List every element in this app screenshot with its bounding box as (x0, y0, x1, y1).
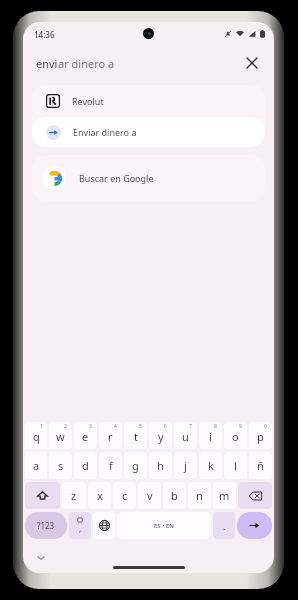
button[interactable]: e (74, 422, 97, 449)
staticText: e (82, 429, 89, 444)
button[interactable]: Emoji and comma (69, 512, 91, 539)
staticText: p (257, 429, 264, 444)
button[interactable]: w (49, 422, 72, 449)
staticText: j (184, 458, 187, 473)
staticText: h (157, 458, 164, 473)
staticText: l (234, 458, 237, 473)
button[interactable]: k (199, 452, 222, 479)
staticText: 14:36 (34, 29, 55, 40)
button[interactable]: q (25, 422, 47, 449)
button[interactable]: l (224, 452, 247, 479)
button[interactable]: a (25, 452, 47, 479)
button[interactable]: Clear search (241, 52, 263, 74)
staticText: y (158, 429, 164, 444)
staticText: x (97, 488, 103, 503)
staticText: f (109, 458, 113, 473)
button[interactable]: Buscar en Google (32, 155, 265, 201)
button[interactable]: b (163, 482, 186, 509)
button[interactable]: c (113, 482, 136, 509)
staticText: Buscar en Google (79, 172, 154, 184)
staticText: 8 (214, 423, 217, 430)
staticText: 9 (239, 423, 242, 430)
button[interactable]: ñ (249, 452, 272, 479)
staticText: 1 (40, 423, 43, 430)
button[interactable]: z (62, 482, 86, 509)
staticText: 7 (189, 423, 192, 430)
staticText: r (108, 429, 113, 444)
staticText: a (33, 458, 40, 473)
button[interactable]: ES • EN (117, 512, 211, 539)
button[interactable]: ?123 (25, 512, 67, 539)
staticText: envi (36, 56, 58, 71)
button[interactable]: u (174, 422, 197, 449)
button[interactable]: v (138, 482, 161, 509)
staticText: 0 (264, 423, 267, 430)
staticText: 5 (139, 423, 142, 430)
button[interactable]: s (49, 452, 72, 479)
staticText: u (182, 429, 189, 444)
button[interactable]: g (124, 452, 147, 479)
staticText: s (58, 458, 64, 473)
button[interactable]: . (213, 512, 235, 539)
button[interactable]: m (213, 482, 236, 509)
staticText: ES • EN (154, 522, 175, 530)
staticText: d (82, 458, 89, 473)
staticText: t (134, 429, 138, 444)
staticText: ñ (257, 458, 264, 473)
staticText: 4 (114, 423, 117, 430)
button[interactable]: r (99, 422, 122, 449)
button[interactable]: n (188, 482, 211, 509)
button[interactable]: Backspace (238, 482, 272, 509)
button[interactable]: Shift (25, 482, 60, 509)
button[interactable]: x (88, 482, 111, 509)
staticText: ?123 (37, 520, 55, 531)
staticText: i (209, 429, 212, 444)
staticText: ar dinero a (58, 56, 115, 71)
staticText: v (147, 488, 153, 503)
staticText: Revolut (72, 95, 104, 107)
button[interactable]: p (249, 422, 272, 449)
staticText: 3 (89, 423, 92, 430)
staticText: 2 (64, 423, 67, 430)
staticText: o (232, 429, 239, 444)
button[interactable]: Search (237, 512, 272, 539)
button[interactable]: Revolut (32, 85, 265, 117)
button[interactable]: Hide keyboard (33, 550, 49, 566)
staticText: q (33, 429, 40, 444)
button[interactable]: j (174, 452, 197, 479)
button[interactable]: Enviar dinero a (32, 117, 265, 147)
staticText: n (196, 488, 203, 503)
button[interactable]: d (74, 452, 97, 479)
staticText: b (171, 488, 178, 503)
button[interactable]: y (149, 422, 172, 449)
staticText: g (132, 458, 139, 473)
staticText: c (122, 488, 128, 503)
staticText: 6 (164, 423, 167, 430)
button[interactable]: f (99, 452, 122, 479)
staticText: Enviar dinero a (73, 126, 137, 138)
staticText: z (71, 488, 77, 503)
staticText: , (79, 523, 82, 534)
staticText: m (219, 488, 230, 503)
staticText: . (223, 520, 226, 532)
button[interactable]: o (224, 422, 247, 449)
button[interactable]: h (149, 452, 172, 479)
button[interactable]: t (124, 422, 147, 449)
staticText: w (56, 429, 65, 444)
button[interactable]: Change language (93, 512, 115, 539)
staticText: k (208, 458, 214, 473)
button[interactable]: i (199, 422, 222, 449)
button[interactable]: envi (23, 46, 274, 80)
